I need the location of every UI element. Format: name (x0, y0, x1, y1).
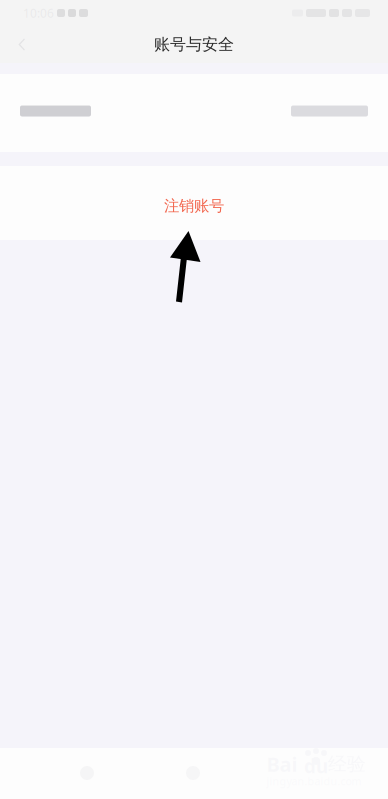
button[interactable] (0, 74, 388, 152)
staticText: 10:06 (23, 5, 54, 21)
button[interactable]: 注销账号 (0, 166, 388, 240)
staticText: 账号与安全 (154, 34, 234, 55)
staticText: 注销账号 (164, 196, 224, 216)
